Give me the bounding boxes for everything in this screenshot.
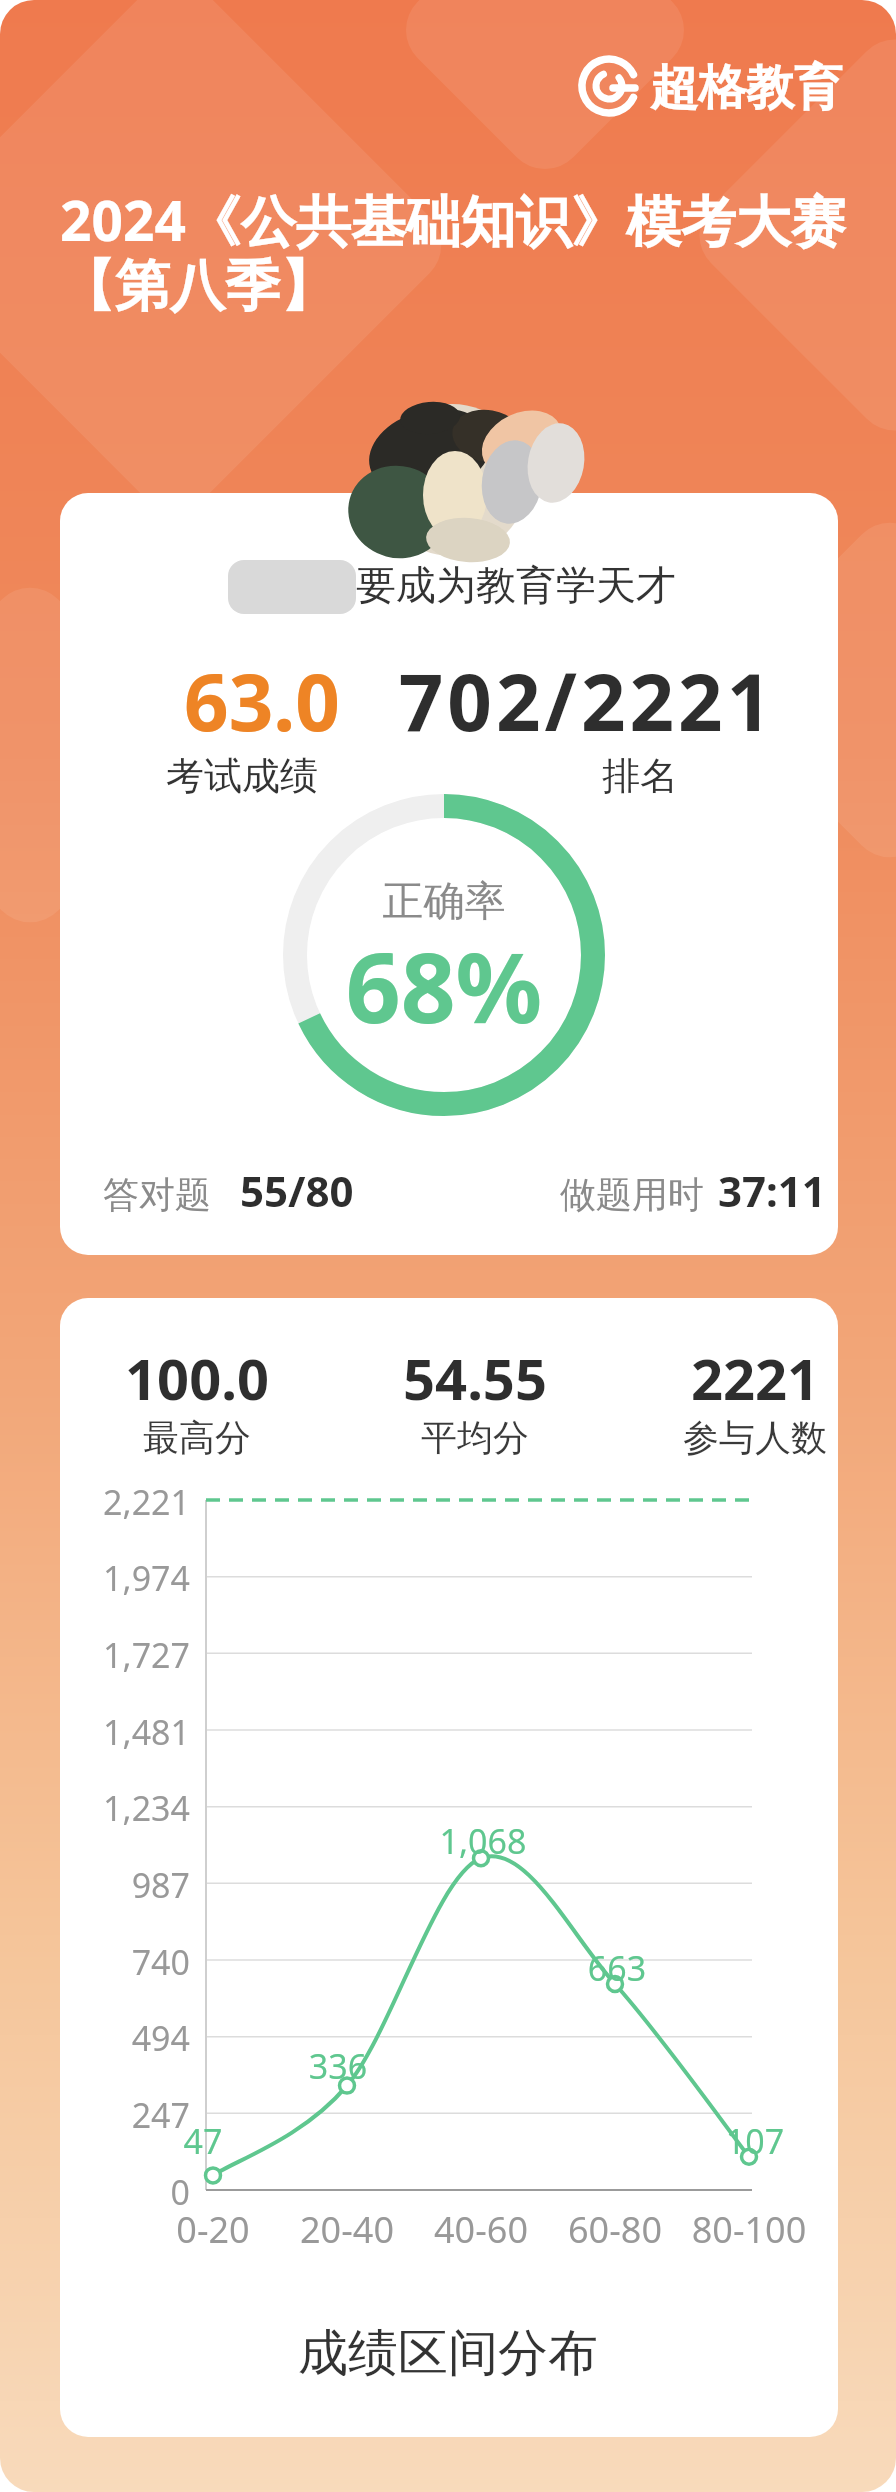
staticText: 正确率	[304, 876, 584, 928]
staticText: 0-20	[133, 2205, 293, 2254]
staticText: 1,068	[413, 1818, 553, 1864]
staticText: 60-80	[535, 2205, 695, 2254]
staticText: 参与人数	[615, 1415, 895, 1460]
staticText: 47	[133, 2118, 273, 2164]
staticText: 37:11	[718, 1162, 826, 1219]
staticText: 超格教育	[650, 58, 842, 118]
staticText: 2221	[615, 1340, 895, 1416]
staticText: 2,221	[40, 1479, 190, 1525]
staticText: 336	[268, 2043, 408, 2089]
staticText: 68%	[304, 920, 584, 1051]
staticText: 1,234	[40, 1785, 190, 1831]
staticText: 100.0	[57, 1340, 337, 1416]
staticText: 0	[40, 2169, 190, 2215]
staticText: 740	[40, 1939, 190, 1985]
staticText: 最高分	[57, 1415, 337, 1460]
staticText: 平均分	[335, 1415, 615, 1460]
staticText: 1,481	[40, 1709, 190, 1755]
staticText: 2024《公共基础知识》模考大赛 【第八季】	[60, 182, 846, 321]
staticText: 成绩区间分布	[148, 2322, 748, 2385]
staticText: 63.0	[122, 648, 402, 754]
staticText: 考试成绩	[102, 752, 382, 800]
staticText: 55/80	[240, 1162, 354, 1219]
staticText: 663	[547, 1945, 687, 1991]
staticText: 要成为教育学天才	[356, 560, 676, 610]
staticText: 494	[40, 2015, 190, 2061]
staticText: 987	[40, 1862, 190, 1908]
staticText: 54.55	[335, 1340, 615, 1416]
staticText: 247	[40, 2092, 190, 2138]
staticText: 80-100	[669, 2205, 829, 2254]
staticText: 做题用时	[560, 1172, 704, 1217]
staticText: 1,727	[40, 1632, 190, 1678]
staticText: 排名	[500, 752, 780, 800]
staticText: 40-60	[401, 2205, 561, 2254]
staticText: 702/2221	[377, 648, 797, 754]
staticText: 107	[685, 2118, 825, 2164]
staticText: 20-40	[267, 2205, 427, 2254]
staticText: 答对题	[103, 1172, 211, 1217]
staticText: 1,974	[40, 1555, 190, 1601]
